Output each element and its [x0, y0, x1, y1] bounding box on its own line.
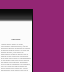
staticText: Lorem ipsum dolor sit amet, consectetur …: [1, 43, 31, 72]
button[interactable]: [0, 9, 32, 22]
staticText: HEADING: [1, 38, 31, 41]
